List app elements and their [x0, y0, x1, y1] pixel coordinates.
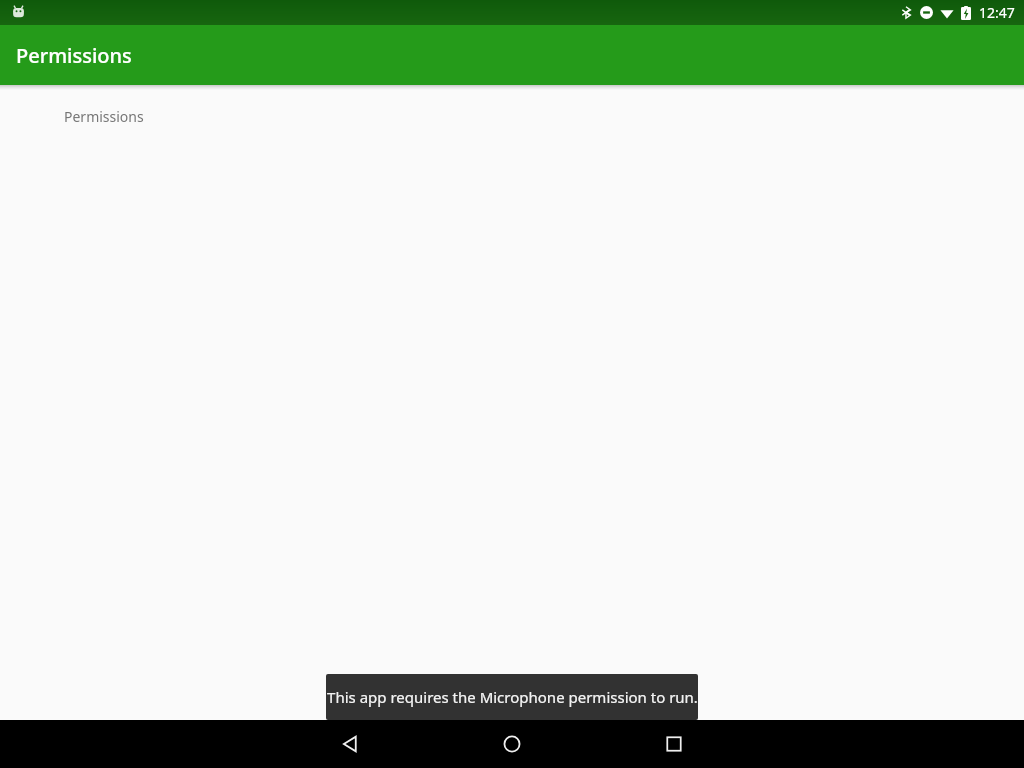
button[interactable]: Back	[318, 720, 382, 768]
button[interactable]: Recent apps	[642, 720, 706, 768]
button[interactable]: Home	[480, 720, 544, 768]
staticText: Permissions	[16, 42, 132, 69]
staticText: 12:47	[979, 3, 1015, 22]
staticText: Permissions	[64, 107, 144, 126]
staticText: This app requires the Microphone permiss…	[327, 687, 698, 707]
